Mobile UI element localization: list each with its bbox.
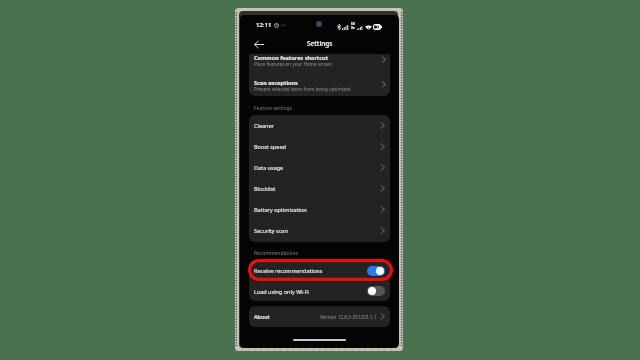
- staticText: Recommendations: [254, 250, 298, 257]
- staticText: Version 12.8.5-251203.1.1: [320, 314, 377, 320]
- staticText: Place features on your Home screen: [254, 61, 332, 67]
- staticText: Cleaner: [254, 122, 274, 129]
- staticText: 5G: [351, 22, 355, 26]
- button[interactable]: Data usage: [249, 157, 390, 178]
- button[interactable]: Load using only Wi-Fi: [249, 281, 390, 301]
- button[interactable]: Boost speed: [249, 136, 390, 157]
- button[interactable]: Battery optimization: [249, 199, 390, 220]
- staticText: Battery optimization: [254, 206, 307, 213]
- button[interactable]: About: [249, 306, 390, 327]
- staticText: Feature settings: [254, 105, 292, 112]
- button[interactable]: Back: [253, 38, 265, 50]
- staticText: About: [254, 313, 270, 320]
- staticText: Receive recommendations: [254, 267, 323, 274]
- staticText: Common features shortcut: [254, 54, 329, 61]
- staticText: Vo: [351, 26, 355, 30]
- button[interactable]: Receive recommendations: [249, 260, 390, 281]
- staticText: Boost speed: [254, 143, 286, 150]
- staticText: 12:11: [256, 21, 272, 29]
- staticText: Prevent selected items from being optimi…: [254, 86, 351, 92]
- staticText: Security scan: [254, 227, 288, 234]
- staticText: Scan exceptions: [254, 79, 298, 86]
- button[interactable]: Common features shortcut: [249, 54, 390, 72]
- button[interactable]: Cleaner: [249, 115, 390, 136]
- staticText: Data usage: [254, 164, 284, 171]
- button[interactable]: Security scan: [249, 220, 390, 241]
- staticText: Settings: [307, 39, 333, 48]
- staticText: Blocklist: [254, 185, 276, 192]
- staticText: Load using only Wi-Fi: [254, 288, 309, 295]
- button[interactable]: Scan exceptions: [249, 72, 390, 89]
- button[interactable]: Blocklist: [249, 178, 390, 199]
